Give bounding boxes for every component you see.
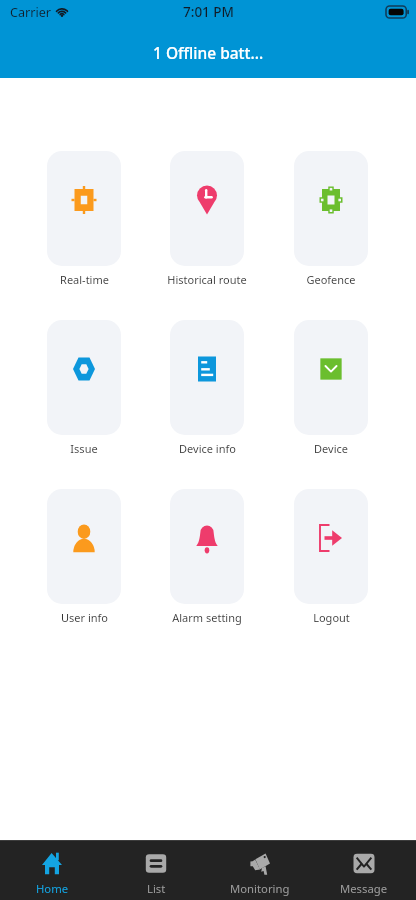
staticText: 7:01 PM [183, 3, 234, 21]
button[interactable]: Home [0, 841, 104, 900]
staticText: Real-time [60, 272, 109, 287]
staticText: Alarm setting [172, 610, 242, 625]
staticText: Message [340, 881, 388, 896]
staticText: List [147, 881, 166, 896]
staticText: Device [314, 441, 348, 456]
button[interactable]: Alarm setting [170, 489, 244, 625]
button[interactable]: List [104, 841, 208, 900]
button[interactable]: Real-time [47, 151, 121, 287]
button[interactable]: Geofence [294, 151, 368, 287]
button[interactable]: Logout [294, 489, 368, 625]
button[interactable]: Device info [170, 320, 244, 456]
staticText: Home [36, 881, 69, 896]
staticText: 1 Offline batt... [153, 42, 264, 63]
button[interactable]: Historical route [170, 151, 244, 287]
staticText: Monitoring [230, 881, 290, 896]
button[interactable]: Issue [47, 320, 121, 456]
button[interactable]: Device [294, 320, 368, 456]
staticText: Geofence [306, 272, 356, 287]
staticText: Carrier [10, 4, 51, 21]
staticText: User info [61, 610, 108, 625]
staticText: Logout [313, 610, 350, 625]
staticText: Issue [70, 441, 98, 456]
staticText: Device info [179, 441, 236, 456]
button[interactable]: Message [312, 841, 416, 900]
button[interactable]: Monitoring [208, 841, 312, 900]
staticText: Historical route [167, 272, 247, 287]
button[interactable]: User info [47, 489, 121, 625]
